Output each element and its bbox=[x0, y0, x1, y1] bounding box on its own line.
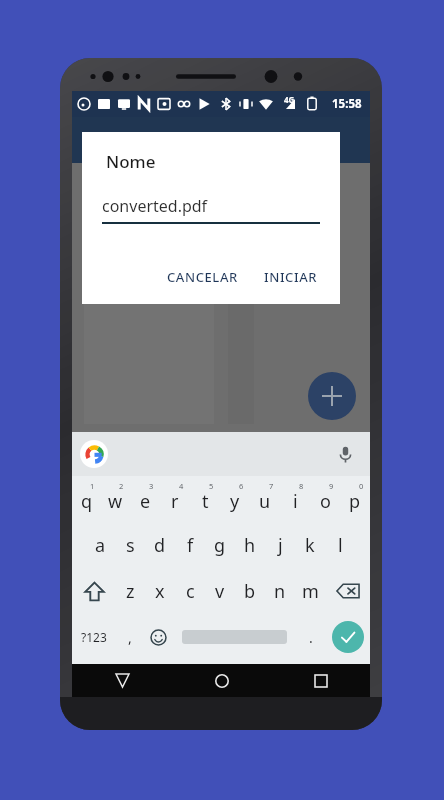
button[interactable]: Voice input bbox=[332, 441, 358, 467]
staticText: a bbox=[95, 533, 106, 558]
staticText: p bbox=[349, 489, 361, 514]
button[interactable]: b bbox=[235, 568, 265, 614]
staticText: m bbox=[302, 579, 319, 604]
staticText: 8 bbox=[299, 481, 304, 491]
staticText: 4G bbox=[284, 94, 295, 105]
button[interactable]: k bbox=[295, 522, 325, 568]
staticText: i bbox=[293, 489, 298, 514]
staticText: . bbox=[309, 628, 313, 647]
button[interactable]: 0 bbox=[340, 476, 370, 522]
button[interactable]: Emoji bbox=[144, 614, 172, 660]
button[interactable]: f bbox=[175, 522, 205, 568]
button[interactable]: . bbox=[297, 614, 325, 660]
staticText: INICIAR bbox=[264, 268, 318, 286]
button[interactable]: Home bbox=[172, 664, 271, 697]
button[interactable]: Shift bbox=[72, 568, 116, 614]
staticText: t bbox=[202, 489, 209, 514]
button[interactable]: 2 bbox=[101, 476, 130, 522]
staticText: v bbox=[215, 579, 225, 604]
button[interactable]: Recents bbox=[271, 664, 370, 697]
button[interactable]: Enter bbox=[332, 621, 364, 653]
button[interactable]: 4 bbox=[160, 476, 190, 522]
button[interactable]: , bbox=[116, 614, 144, 660]
staticText: z bbox=[126, 579, 135, 604]
button[interactable]: v bbox=[205, 568, 235, 614]
button[interactable]: l bbox=[325, 522, 355, 568]
staticText: 3 bbox=[149, 481, 154, 491]
staticText: 6 bbox=[239, 481, 244, 491]
staticText: , bbox=[128, 628, 132, 647]
button[interactable]: g bbox=[205, 522, 235, 568]
staticText: e bbox=[140, 489, 151, 514]
staticText: n bbox=[274, 579, 286, 604]
staticText: k bbox=[305, 533, 315, 558]
button[interactable]: Add image bbox=[308, 372, 356, 420]
button[interactable]: ?123 bbox=[72, 614, 116, 660]
staticText: Image2PDF Converter bbox=[88, 129, 262, 151]
button[interactable]: converted.pdf bbox=[102, 195, 320, 224]
staticText: r bbox=[171, 489, 179, 514]
button[interactable]: 9 bbox=[310, 476, 340, 522]
staticText: 1 bbox=[90, 481, 95, 491]
button[interactable]: Back bbox=[72, 664, 172, 697]
staticText: w bbox=[108, 489, 123, 514]
button[interactable]: 7 bbox=[250, 476, 280, 522]
button[interactable]: Backspace bbox=[325, 568, 370, 614]
staticText: 2 bbox=[119, 481, 124, 491]
staticText: Nome bbox=[106, 150, 156, 173]
staticText: 4 bbox=[179, 481, 184, 491]
staticText: 9 bbox=[329, 481, 334, 491]
staticText: o bbox=[320, 489, 331, 514]
button[interactable]: n bbox=[265, 568, 295, 614]
button[interactable]: x bbox=[145, 568, 175, 614]
staticText: g bbox=[214, 533, 226, 558]
staticText: x bbox=[155, 579, 165, 604]
staticText: l bbox=[338, 533, 343, 558]
button[interactable]: CANCELAR bbox=[159, 262, 246, 292]
staticText: CANCELAR bbox=[167, 268, 238, 286]
button[interactable]: s bbox=[115, 522, 145, 568]
staticText: b bbox=[244, 579, 256, 604]
staticText: 7 bbox=[269, 481, 274, 491]
staticText: q bbox=[81, 489, 93, 514]
button[interactable]: 3 bbox=[130, 476, 160, 522]
staticText: j bbox=[278, 533, 283, 558]
staticText: converted.pdf bbox=[102, 195, 208, 217]
staticText: y bbox=[230, 489, 240, 514]
staticText: c bbox=[186, 579, 195, 604]
button[interactable]: j bbox=[265, 522, 295, 568]
staticText: 15:58 bbox=[332, 96, 362, 112]
staticText: u bbox=[259, 489, 271, 514]
staticText: 5 bbox=[209, 481, 214, 491]
button[interactable]: h bbox=[235, 522, 265, 568]
staticText: ?123 bbox=[81, 629, 107, 645]
button[interactable]: Google bbox=[80, 440, 108, 468]
button[interactable]: z bbox=[116, 568, 145, 614]
staticText: d bbox=[154, 533, 166, 558]
button[interactable]: c bbox=[175, 568, 205, 614]
staticText: h bbox=[244, 533, 256, 558]
button[interactable]: m bbox=[295, 568, 325, 614]
staticText: 0 bbox=[359, 481, 364, 491]
button[interactable]: 8 bbox=[280, 476, 310, 522]
button[interactable]: 5 bbox=[190, 476, 220, 522]
staticText: f bbox=[187, 533, 194, 558]
button[interactable]: 6 bbox=[220, 476, 250, 522]
button[interactable]: a bbox=[86, 522, 115, 568]
button[interactable]: Space bbox=[172, 614, 297, 660]
button[interactable]: 1 bbox=[72, 476, 101, 522]
staticText: s bbox=[126, 533, 135, 558]
button[interactable]: d bbox=[145, 522, 175, 568]
button[interactable]: INICIAR bbox=[256, 262, 326, 292]
